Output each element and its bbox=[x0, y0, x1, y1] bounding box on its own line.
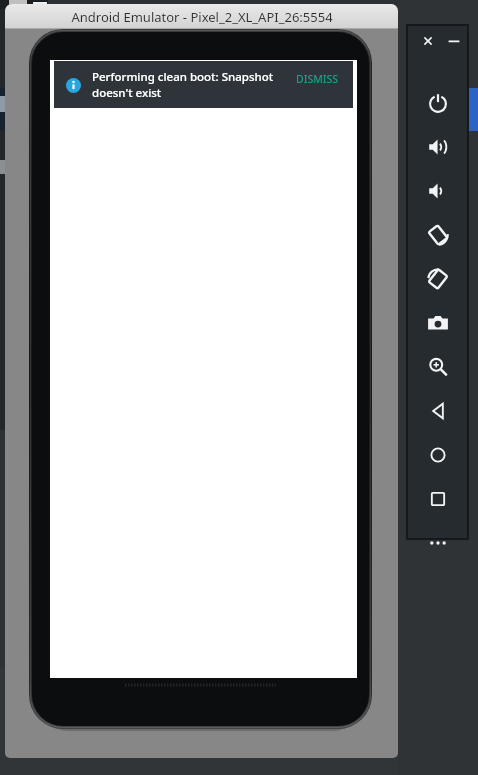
staticText: Performing clean boot: Snapshot bbox=[92, 69, 274, 85]
button[interactable]: Volume up bbox=[422, 131, 453, 162]
button[interactable]: Information bbox=[54, 61, 353, 108]
button[interactable]: Take screenshot bbox=[422, 307, 453, 338]
button[interactable]: Home bbox=[422, 439, 453, 470]
staticText: DISMISS bbox=[296, 72, 339, 86]
button[interactable]: Zoom bbox=[422, 351, 453, 382]
staticText: Android Emulator - Pixel_2_XL_API_26:555… bbox=[71, 8, 333, 26]
other: Information bbox=[66, 78, 81, 93]
button[interactable]: Volume down bbox=[422, 175, 453, 206]
button[interactable]: Close bbox=[419, 32, 437, 50]
button[interactable]: More bbox=[422, 527, 453, 558]
staticText: doesn't exist bbox=[92, 85, 162, 101]
button[interactable]: Minimize bbox=[445, 32, 463, 50]
button[interactable]: DISMISS bbox=[294, 68, 341, 90]
button[interactable]: Power bbox=[422, 87, 453, 118]
button[interactable]: Rotate right bbox=[422, 263, 453, 294]
button[interactable]: Rotate left bbox=[422, 219, 453, 250]
button[interactable]: Overview bbox=[422, 483, 453, 514]
button[interactable]: Back bbox=[422, 395, 453, 426]
